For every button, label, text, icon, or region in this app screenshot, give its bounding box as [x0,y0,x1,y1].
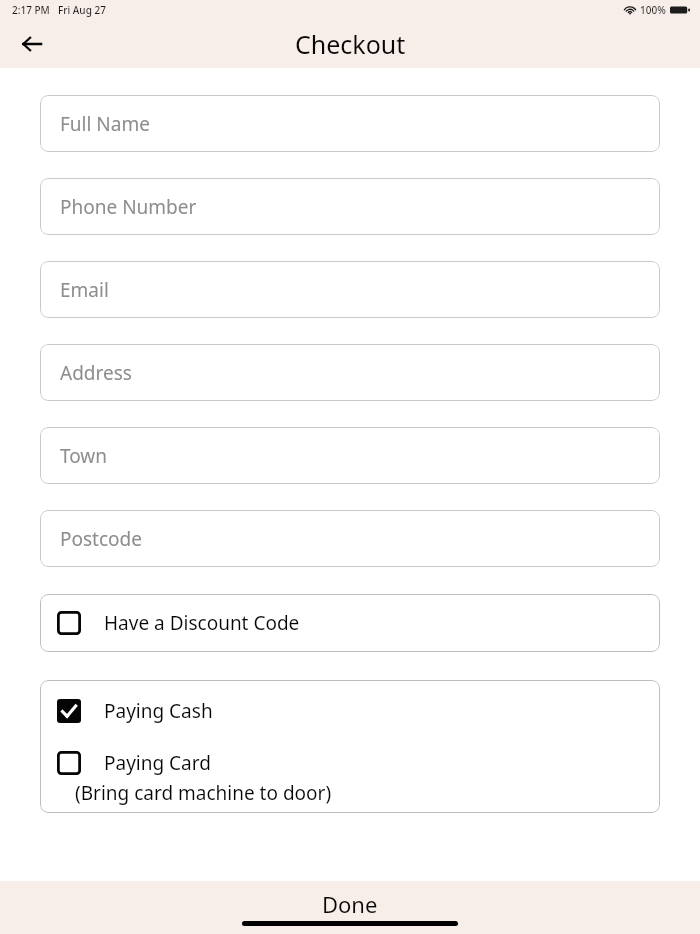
staticText: Paying Card [104,750,211,776]
staticText: Address [60,360,132,386]
button[interactable]: Have a Discount Code [40,594,660,652]
button[interactable]: Postcode [40,510,660,567]
staticText: Town [60,443,108,469]
button[interactable]: Email [40,261,660,318]
button[interactable]: Phone Number [40,178,660,235]
staticText: Paying Cash [104,698,213,724]
button[interactable]: Paying Cash [40,698,660,724]
staticText: Phone Number [60,194,197,220]
button[interactable]: Full Name [40,95,660,152]
staticText: Full Name [60,111,150,137]
staticText: Email [60,277,109,303]
staticText: Postcode [60,526,142,552]
staticText: Fri Aug 27 [58,3,106,17]
button[interactable]: Town [40,427,660,484]
button[interactable]: Back [12,24,52,64]
button[interactable]: Done [306,887,394,921]
button[interactable]: Address [40,344,660,401]
staticText: Checkout [295,27,406,61]
button[interactable]: Paying Card [40,750,660,806]
staticText: Have a Discount Code [104,610,300,636]
staticText: Done [322,889,378,919]
staticText: 2:17 PM [12,3,50,17]
staticText: (Bring card machine to door) [75,780,332,806]
staticText: 100% [640,3,666,17]
